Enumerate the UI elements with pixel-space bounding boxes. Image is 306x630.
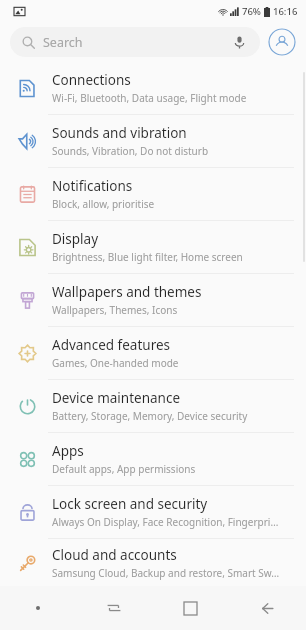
button[interactable]: Account bbox=[268, 28, 296, 56]
button[interactable]: Voice search bbox=[230, 33, 248, 51]
staticText: Advanced features bbox=[52, 336, 171, 354]
staticText: Block, allow, prioritise bbox=[52, 197, 155, 211]
staticText: Cloud and accounts bbox=[52, 546, 177, 564]
button[interactable]: Cloud and accounts bbox=[0, 539, 306, 586]
staticText: Wallpapers and themes bbox=[52, 283, 202, 301]
staticText: 16:16 bbox=[273, 5, 298, 18]
button[interactable]: Wallpapers and themes bbox=[0, 274, 306, 326]
staticText: Sounds, Vibration, Do not disturb bbox=[52, 144, 209, 158]
button[interactable]: Apps bbox=[0, 433, 306, 485]
staticText: Search bbox=[43, 34, 83, 51]
button[interactable]: Notification dot bbox=[0, 586, 76, 630]
staticText: Wallpapers, Themes, Icons bbox=[52, 303, 178, 317]
button[interactable]: Advanced features bbox=[0, 327, 306, 379]
staticText: Sounds and vibration bbox=[52, 124, 187, 142]
staticText: Notifications bbox=[52, 177, 133, 195]
staticText: Display bbox=[52, 230, 99, 248]
staticText: Brightness, Blue light filter, Home scre… bbox=[52, 250, 243, 264]
button[interactable]: Notifications bbox=[0, 168, 306, 220]
button[interactable]: Device maintenance bbox=[0, 380, 306, 432]
staticText: 76% bbox=[242, 5, 261, 18]
staticText: Default apps, App permissions bbox=[52, 462, 196, 476]
button[interactable]: Display bbox=[0, 221, 306, 273]
staticText: Wi-Fi, Bluetooth, Data usage, Flight mod… bbox=[52, 91, 247, 105]
staticText: Samsung Cloud, Backup and restore, Smart… bbox=[52, 566, 280, 580]
staticText: Games, One-handed mode bbox=[52, 356, 179, 370]
staticText: Lock screen and security bbox=[52, 495, 208, 513]
button[interactable]: Connections bbox=[0, 62, 306, 114]
button[interactable]: Sounds and vibration bbox=[0, 115, 306, 167]
staticText: Apps bbox=[52, 442, 84, 460]
staticText: Battery, Storage, Memory, Device securit… bbox=[52, 409, 248, 423]
button[interactable]: Home bbox=[152, 586, 229, 630]
staticText: Device maintenance bbox=[52, 389, 181, 407]
button[interactable]: Back bbox=[229, 586, 306, 630]
staticText: Connections bbox=[52, 71, 131, 89]
button[interactable]: Recents bbox=[76, 586, 152, 630]
button[interactable]: Search bbox=[10, 27, 260, 57]
button[interactable]: Lock screen and security bbox=[0, 486, 306, 538]
staticText: Always On Display, Face Recognition, Fin… bbox=[52, 515, 279, 529]
